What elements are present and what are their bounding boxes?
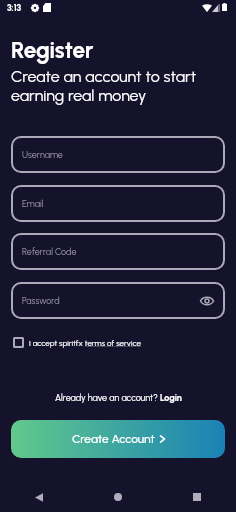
staticText: Already have an account? [55,392,160,403]
staticText: 3:13 [7,2,22,13]
button[interactable]: Show password [199,293,215,309]
staticText: Register [11,37,94,64]
staticText: Create Account [72,432,155,446]
button[interactable]: Create Account [11,420,225,458]
button[interactable]: Email [11,185,225,222]
button[interactable]: Username [11,136,225,173]
button[interactable]: I accept spiritfx terms of service [13,333,141,352]
button[interactable]: Recent apps [157,482,236,512]
button[interactable]: Home [78,482,157,512]
staticText: Email [22,198,44,209]
staticText: I accept spiritfx terms of service [29,338,141,348]
staticText: Username [22,149,63,160]
button[interactable]: Password [11,282,225,319]
staticText: Create an account to start earning real … [11,67,197,105]
staticText: Referral Code [22,246,77,257]
button[interactable]: Login [160,392,182,403]
button[interactable]: Back [0,482,78,512]
button[interactable]: Referral Code [11,233,225,270]
staticText: Password [22,295,60,306]
